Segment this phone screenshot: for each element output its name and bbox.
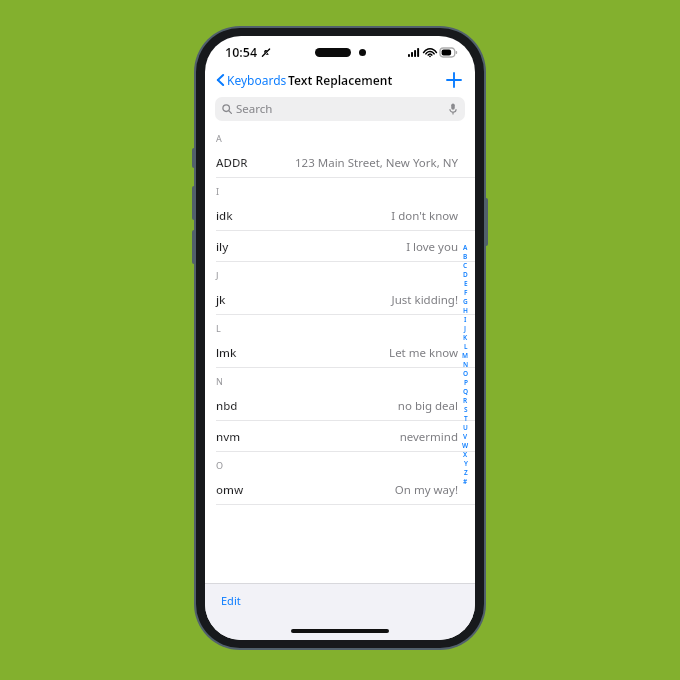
- staticText: F: [464, 288, 468, 297]
- staticText: On my way!: [394, 482, 458, 498]
- staticText: nevermind: [399, 429, 458, 445]
- staticText: Just kidding!: [391, 292, 458, 308]
- staticText: jk: [216, 292, 226, 308]
- other: Voice search: [449, 103, 457, 115]
- button[interactable]: Edit: [213, 589, 249, 612]
- button[interactable]: ADDR: [205, 147, 475, 178]
- staticText: O: [463, 369, 469, 378]
- staticText: no big deal: [397, 398, 458, 414]
- staticText: Search: [236, 101, 273, 117]
- button[interactable]: nvm: [205, 421, 475, 452]
- staticText: I don't know: [391, 208, 458, 224]
- staticText: N: [463, 360, 469, 369]
- button[interactable]: lmk: [205, 337, 475, 368]
- staticText: B: [463, 252, 468, 261]
- staticText: O: [216, 459, 224, 471]
- staticText: H: [463, 306, 468, 315]
- staticText: N: [216, 375, 223, 387]
- button[interactable]: Alphabet index: [461, 243, 470, 486]
- staticText: #: [463, 477, 468, 486]
- staticText: lmk: [216, 345, 237, 361]
- button[interactable]: Search: [215, 97, 465, 121]
- staticText: nbd: [216, 398, 238, 414]
- staticText: idk: [216, 208, 233, 224]
- staticText: D: [463, 270, 468, 279]
- staticText: K: [463, 333, 468, 342]
- staticText: L: [216, 322, 221, 334]
- staticText: nvm: [216, 429, 241, 445]
- staticText: I: [464, 315, 467, 324]
- staticText: A: [463, 243, 468, 252]
- staticText: 10:54: [225, 44, 258, 61]
- staticText: L: [464, 342, 468, 351]
- staticText: omw: [216, 482, 244, 498]
- staticText: T: [464, 414, 468, 423]
- staticText: Text Replacement: [288, 72, 393, 88]
- button[interactable]: idk: [205, 200, 475, 231]
- staticText: I love you: [406, 239, 458, 255]
- staticText: J: [216, 269, 219, 281]
- staticText: Keyboards: [227, 72, 287, 88]
- staticText: R: [463, 396, 468, 405]
- staticText: 123 Main Street, New York, NY: [295, 155, 458, 171]
- staticText: I: [216, 185, 220, 197]
- staticText: J: [464, 324, 467, 333]
- button[interactable]: jk: [205, 284, 475, 315]
- staticText: Y: [464, 459, 468, 468]
- button[interactable]: Add: [441, 67, 467, 93]
- staticText: ily: [216, 239, 229, 255]
- staticText: Edit: [221, 593, 241, 608]
- staticText: Q: [463, 387, 469, 396]
- staticText: G: [463, 297, 468, 306]
- button[interactable]: omw: [205, 474, 475, 505]
- staticText: U: [463, 423, 468, 432]
- staticText: X: [463, 450, 468, 459]
- button[interactable]: ily: [205, 231, 475, 262]
- staticText: A: [216, 132, 222, 144]
- staticText: Let me know: [389, 345, 458, 361]
- staticText: P: [464, 378, 468, 387]
- staticText: E: [464, 279, 468, 288]
- staticText: C: [463, 261, 468, 270]
- staticText: M: [462, 351, 469, 360]
- staticText: ADDR: [216, 155, 248, 171]
- button[interactable]: Keyboards: [211, 69, 293, 91]
- staticText: V: [463, 432, 468, 441]
- button[interactable]: nbd: [205, 390, 475, 421]
- staticText: S: [464, 405, 468, 414]
- staticText: W: [462, 441, 469, 450]
- staticText: Z: [464, 468, 468, 477]
